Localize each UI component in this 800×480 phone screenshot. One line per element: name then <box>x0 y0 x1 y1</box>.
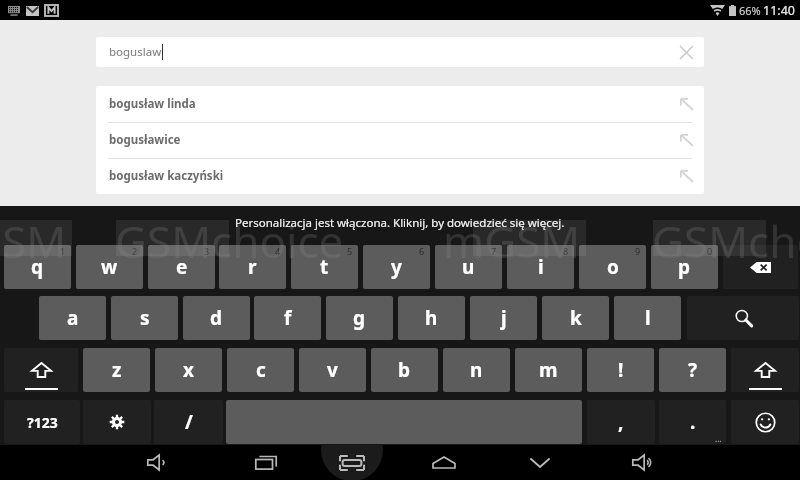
staticText: bogusław linda <box>109 96 196 112</box>
button[interactable]: u <box>435 245 502 289</box>
button[interactable]: bogusław kaczyński <box>96 158 704 194</box>
button[interactable]: t <box>291 245 358 289</box>
staticText: 9 <box>635 245 641 257</box>
staticText: 5 <box>347 245 353 257</box>
button[interactable]: ?123 <box>4 400 80 444</box>
button[interactable]: Emoji <box>731 400 799 444</box>
button[interactable]: Shift right <box>731 348 799 392</box>
button[interactable]: Volume up <box>618 445 666 480</box>
button[interactable]: n <box>443 348 510 392</box>
staticText: r <box>248 254 257 280</box>
button[interactable]: o <box>579 245 646 289</box>
button[interactable]: g <box>326 296 393 340</box>
staticText: 11:40 <box>763 2 795 19</box>
button[interactable]: l <box>614 296 681 340</box>
staticText: bogusław kaczyński <box>109 168 224 184</box>
button[interactable]: , <box>587 400 655 444</box>
button[interactable]: boguslaw <box>96 37 704 67</box>
button[interactable]: j <box>470 296 537 340</box>
staticText: 7 <box>491 245 497 257</box>
staticText: d <box>210 305 223 331</box>
button[interactable]: r <box>219 245 286 289</box>
staticText: 8 <box>563 245 569 257</box>
staticText: x <box>183 357 194 383</box>
staticText: o <box>607 254 619 280</box>
staticText: Personalizacja jest włączona. Kliknij, b… <box>235 215 565 231</box>
button[interactable]: q <box>4 245 71 289</box>
button[interactable]: k <box>542 296 609 340</box>
button[interactable]: Shift <box>4 348 78 392</box>
button[interactable]: ? <box>659 348 726 392</box>
staticText: bogusławice <box>109 132 181 148</box>
staticText: z <box>112 357 122 383</box>
staticText: v <box>327 357 338 383</box>
button[interactable]: h <box>398 296 465 340</box>
button[interactable]: Recent apps <box>242 445 290 480</box>
staticText: q <box>31 254 44 280</box>
button[interactable]: d <box>183 296 250 340</box>
staticText: / <box>185 409 193 435</box>
staticText: GSMchoice <box>115 211 344 271</box>
staticText: mGSM <box>443 211 581 271</box>
button[interactable]: e <box>148 245 215 289</box>
button[interactable]: w <box>76 245 143 289</box>
button[interactable]: . <box>659 400 726 444</box>
button[interactable]: m <box>515 348 582 392</box>
staticText: ... <box>715 433 722 444</box>
staticText: b <box>398 357 411 383</box>
staticText: w <box>101 254 118 280</box>
staticText: c <box>256 357 266 383</box>
staticText: . <box>690 409 696 435</box>
staticText: l <box>645 305 651 331</box>
button[interactable]: Hide keyboard <box>516 445 564 480</box>
button[interactable]: Volume down <box>133 445 181 480</box>
button[interactable]: Backspace <box>723 245 798 289</box>
staticText: h <box>425 305 438 331</box>
staticText: a <box>67 305 79 331</box>
staticText: m <box>539 357 558 383</box>
button[interactable]: Screenshot <box>328 445 376 480</box>
button[interactable]: i <box>507 245 574 289</box>
staticText: mGSM <box>0 211 67 271</box>
staticText: y <box>391 254 402 280</box>
button[interactable]: ! <box>587 348 654 392</box>
staticText: 6 <box>419 245 425 257</box>
button[interactable]: / <box>154 400 223 444</box>
button[interactable]: z <box>83 348 150 392</box>
staticText: p <box>678 254 691 280</box>
button[interactable]: p <box>651 245 718 289</box>
staticText: i <box>538 254 544 280</box>
staticText: 3 <box>204 245 210 257</box>
button[interactable]: x <box>155 348 222 392</box>
button[interactable]: Insert suggestion <box>668 86 704 122</box>
staticText: ? <box>688 357 698 383</box>
button[interactable]: Clear search <box>668 37 704 67</box>
staticText: t <box>320 254 329 280</box>
button[interactable]: c <box>227 348 294 392</box>
staticText: g <box>353 305 366 331</box>
button[interactable]: Search <box>687 296 799 340</box>
button[interactable]: f <box>254 296 321 340</box>
staticText: , <box>618 409 624 435</box>
staticText: ! <box>618 357 624 383</box>
button[interactable]: Home <box>420 445 468 480</box>
staticText: f <box>284 305 292 331</box>
button[interactable]: a <box>39 296 106 340</box>
button[interactable]: v <box>299 348 366 392</box>
button[interactable]: bogusław linda <box>96 86 704 122</box>
staticText: 4 <box>275 245 281 257</box>
staticText: u <box>462 254 475 280</box>
staticText: j <box>501 305 507 331</box>
button[interactable]: s <box>111 296 178 340</box>
button[interactable]: Settings <box>83 400 151 444</box>
button[interactable]: b <box>371 348 438 392</box>
staticText: ?123 <box>27 413 58 432</box>
button[interactable]: y <box>363 245 430 289</box>
button[interactable]: Insert suggestion <box>668 158 704 194</box>
staticText: 1 <box>60 245 66 257</box>
button[interactable]: Insert suggestion <box>668 122 704 158</box>
button[interactable]: bogusławice <box>96 122 704 158</box>
staticText: k <box>570 305 582 331</box>
staticText: 66% <box>739 3 761 18</box>
